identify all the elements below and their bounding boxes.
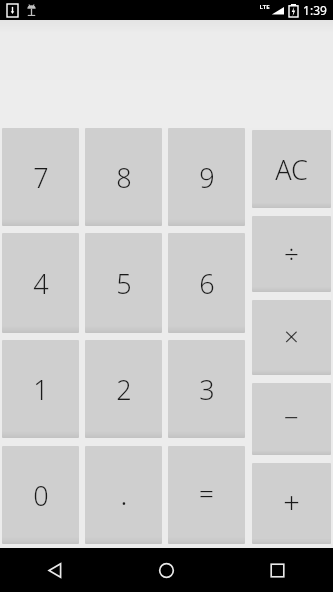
staticText: 7 [33, 159, 49, 196]
staticText: AC [275, 151, 308, 188]
button[interactable]: = [168, 446, 245, 544]
button[interactable]: Subtract [252, 383, 331, 455]
button[interactable]: 0 [2, 446, 79, 544]
staticText: 2 [116, 371, 132, 408]
staticText: 5 [116, 265, 132, 302]
button[interactable]: 3 [168, 340, 245, 438]
staticText: × [284, 318, 299, 353]
staticText: 0 [33, 477, 49, 514]
button[interactable]: Back [0, 548, 111, 592]
button[interactable]: Add [252, 463, 331, 544]
staticText: 1:39 [303, 2, 327, 18]
staticText: − [284, 399, 299, 434]
button[interactable]: 4 [2, 233, 79, 333]
staticText: + [283, 482, 300, 521]
button[interactable]: 1 [2, 340, 79, 438]
button[interactable]: 2 [85, 340, 162, 438]
button[interactable]: Multiply [252, 300, 331, 375]
button[interactable]: Recent apps [222, 548, 333, 592]
button[interactable]: 5 [85, 233, 162, 333]
staticText: 4 [33, 265, 49, 302]
staticText: 3 [199, 371, 215, 408]
button[interactable]: 8 [85, 128, 162, 226]
button[interactable]: All clear [252, 130, 331, 208]
staticText: = [199, 475, 214, 510]
staticText: 1 [33, 371, 49, 408]
button[interactable]: . [85, 446, 162, 544]
staticText: ÷ [284, 235, 299, 270]
button[interactable]: 6 [168, 233, 245, 333]
staticText: . [120, 473, 128, 514]
button[interactable]: Divide [252, 216, 331, 292]
button[interactable]: 7 [2, 128, 79, 226]
staticText: LTE [259, 3, 270, 11]
staticText: 6 [199, 265, 215, 302]
button[interactable]: Home [111, 548, 222, 592]
staticText: 8 [116, 159, 132, 196]
button[interactable]: 9 [168, 128, 245, 226]
staticText: 9 [199, 159, 215, 196]
